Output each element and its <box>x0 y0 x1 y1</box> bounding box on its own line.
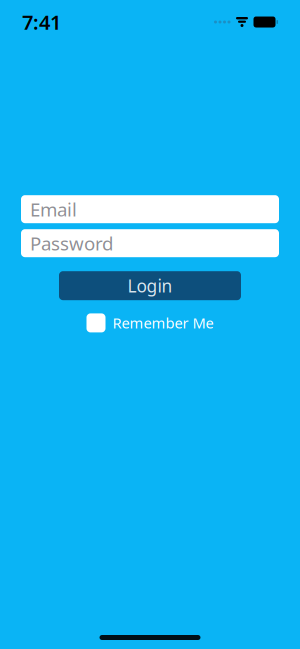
staticText: Password <box>30 231 113 256</box>
staticText: 7:41 <box>22 9 61 35</box>
button[interactable]: Login <box>59 271 241 300</box>
staticText: Login <box>127 274 172 297</box>
staticText: Email <box>30 197 77 222</box>
staticText: Remember Me <box>112 313 213 333</box>
button[interactable]: Remember Me <box>86 313 213 333</box>
